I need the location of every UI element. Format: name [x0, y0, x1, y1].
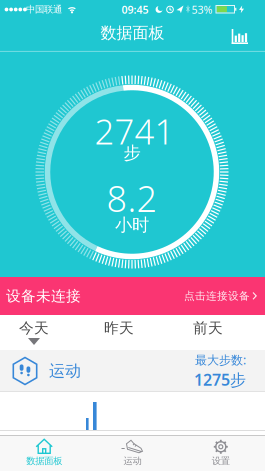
button[interactable]: 运动	[88, 435, 177, 471]
staticText: 小时	[115, 214, 149, 236]
staticText: 点击连接设备	[184, 289, 250, 302]
staticText: 中国联通	[26, 4, 62, 15]
button[interactable]: 设置	[177, 435, 265, 471]
staticText: 设备未连接	[6, 287, 81, 305]
staticText: 运动	[49, 361, 81, 381]
staticText: 09:45	[121, 2, 148, 17]
button[interactable]: 今天	[4, 317, 64, 339]
staticText: 运动	[123, 455, 141, 467]
button[interactable]: 设备未连接	[0, 277, 265, 315]
staticText: 最大步数:	[195, 352, 246, 368]
staticText: 8.2	[106, 174, 157, 222]
staticText: 1275步	[194, 369, 246, 390]
staticText: 设置	[212, 455, 230, 467]
staticText: 数据面板	[26, 455, 62, 467]
staticText: 前天	[193, 319, 223, 337]
staticText: 数据面板	[100, 23, 164, 43]
staticText: 2741	[94, 108, 174, 154]
button[interactable]: 数据面板	[0, 435, 88, 471]
staticText: 昨天	[104, 319, 134, 337]
button[interactable]: 前天	[178, 317, 238, 339]
button[interactable]: 昨天	[89, 317, 149, 339]
button[interactable]: 数据图表	[231, 29, 248, 45]
staticText: 53%	[191, 2, 212, 17]
staticText: 步	[123, 142, 140, 164]
staticText: 今天	[19, 319, 49, 337]
